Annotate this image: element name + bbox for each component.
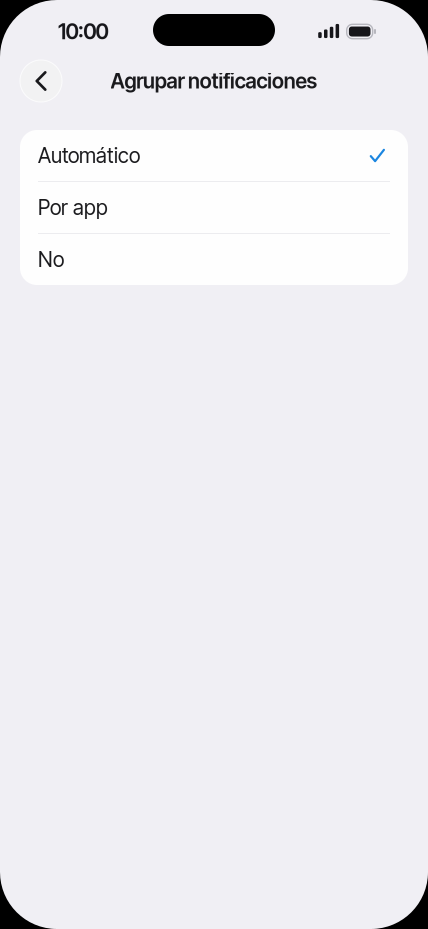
staticText: Automático (38, 143, 140, 168)
button[interactable]: Back (20, 60, 62, 102)
button[interactable]: No (20, 234, 408, 285)
button[interactable]: Por app (20, 182, 408, 233)
button[interactable]: Automático (20, 130, 408, 181)
staticText: Por app (38, 195, 108, 220)
staticText: No (38, 247, 64, 272)
staticText: 10:00 (58, 19, 109, 44)
staticText: Agrupar notificaciones (111, 68, 317, 93)
